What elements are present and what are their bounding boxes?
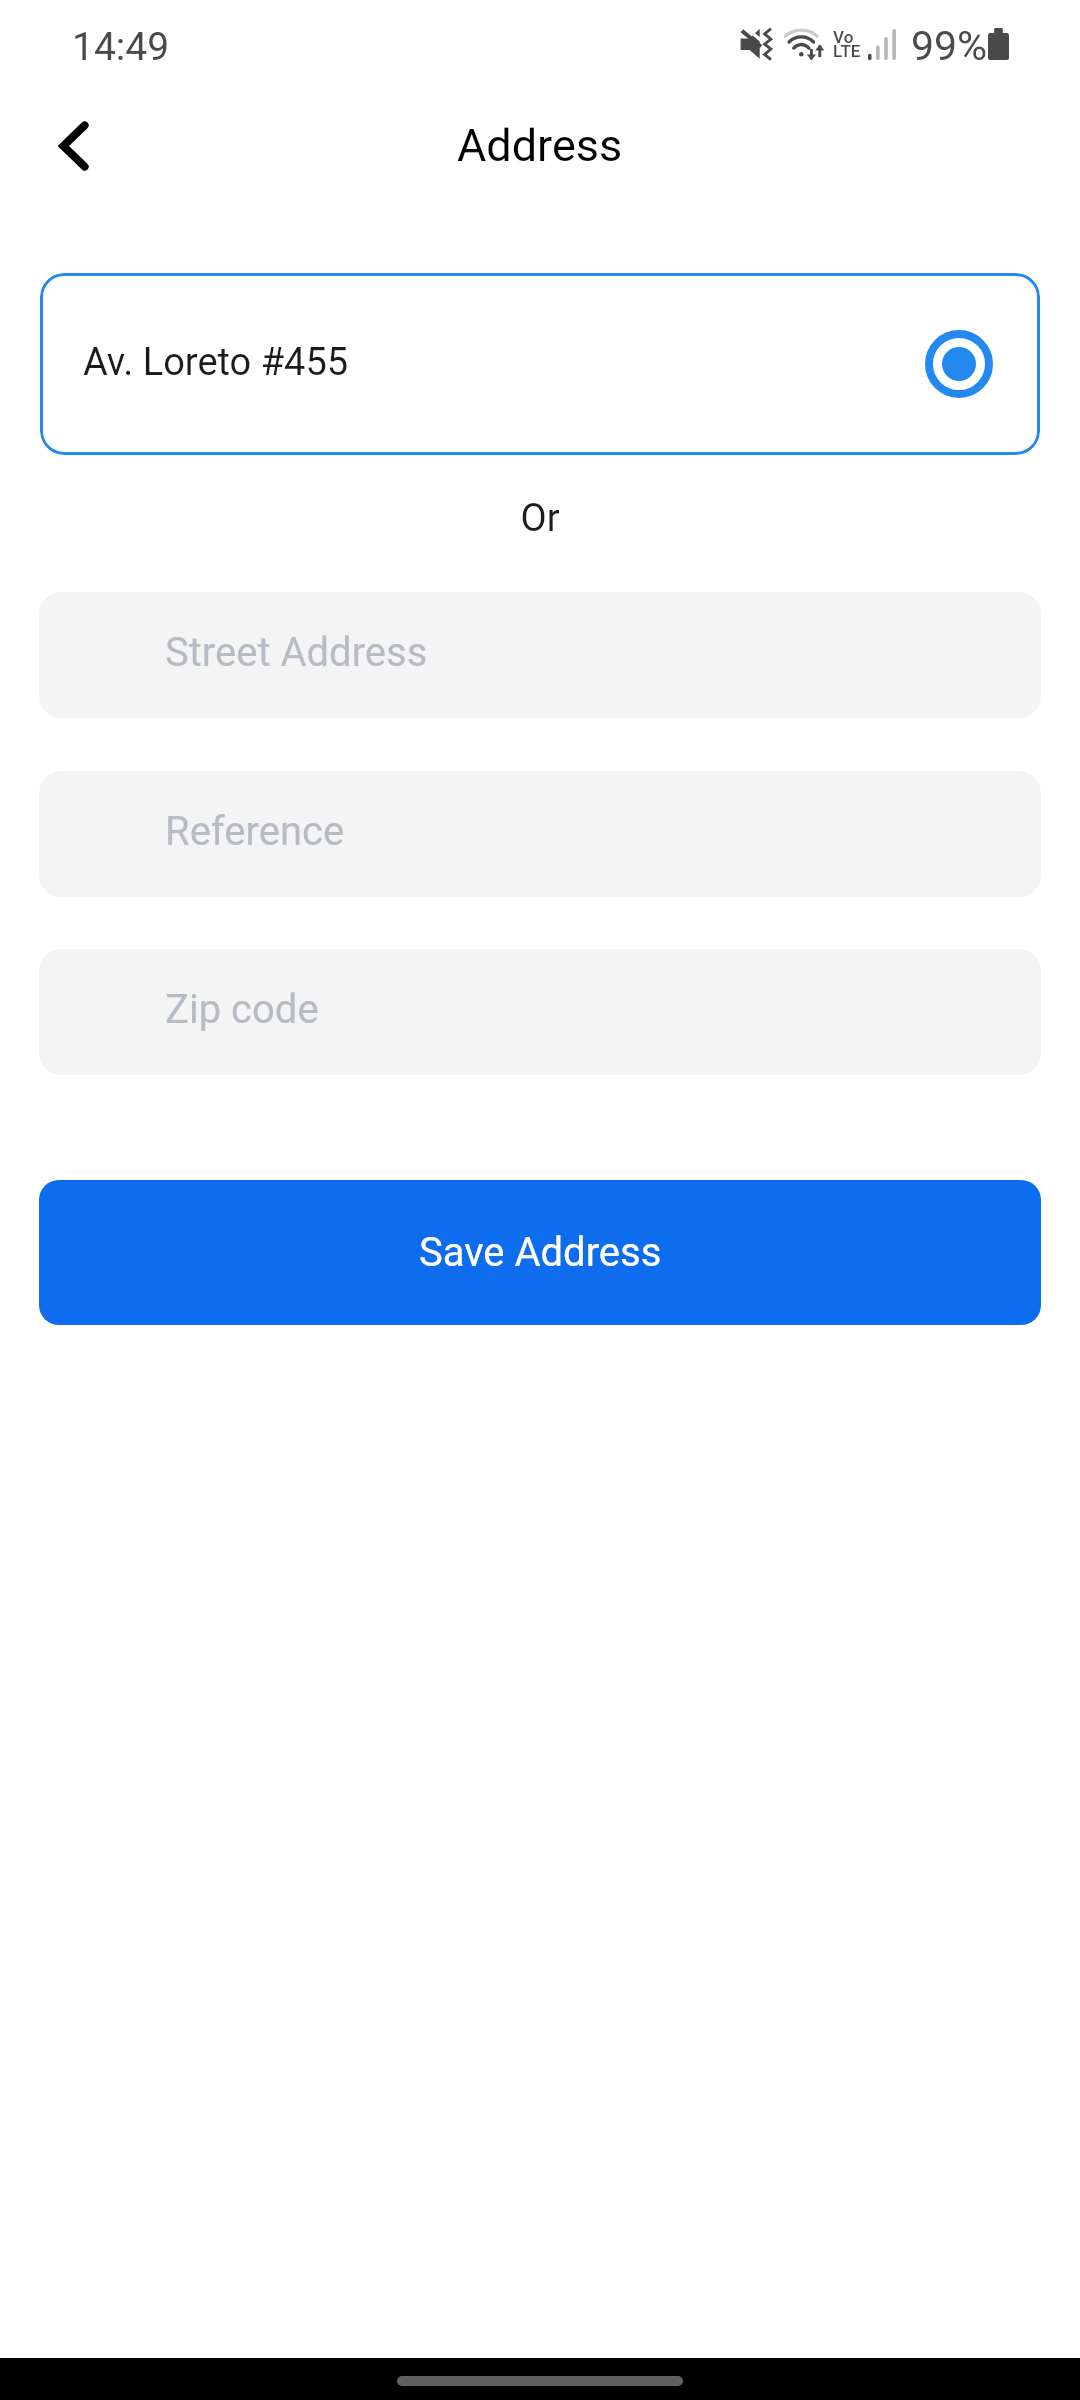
staticText: Or <box>0 496 1080 541</box>
staticText: Reference <box>165 808 345 855</box>
staticText: Address <box>457 119 623 172</box>
button[interactable]: Street Address <box>39 592 1041 718</box>
button[interactable]: Save Address <box>39 1180 1041 1325</box>
staticText: 14:49 <box>72 24 170 70</box>
button[interactable]: Back <box>22 94 126 198</box>
staticText: LTE <box>833 41 861 61</box>
staticText: Street Address <box>165 629 428 676</box>
other: Selected address <box>925 330 993 398</box>
staticText: Vo <box>833 27 854 47</box>
staticText: Save Address <box>419 1229 662 1276</box>
staticText: Zip code <box>165 986 319 1033</box>
button[interactable]: Reference <box>39 771 1041 897</box>
button[interactable]: Zip code <box>39 949 1041 1075</box>
button[interactable]: Av. Loreto #455 <box>40 273 1040 455</box>
staticText: 99% <box>911 22 988 70</box>
staticText: Av. Loreto #455 <box>83 340 349 385</box>
